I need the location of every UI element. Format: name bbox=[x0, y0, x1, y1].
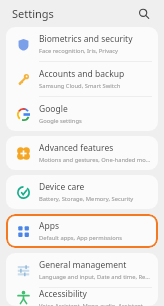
button[interactable]: Biometrics and security bbox=[6, 27, 158, 61]
button[interactable]: Advanced features bbox=[6, 136, 158, 170]
button[interactable]: Search bbox=[135, 5, 153, 23]
staticText: Google settings bbox=[39, 117, 82, 125]
staticText: Face recognition, Iris, Privacy bbox=[39, 47, 119, 55]
staticText: Motions and gestures, One-handed mode bbox=[39, 156, 152, 164]
staticText: Accounts and backup bbox=[39, 68, 125, 80]
button[interactable]: Accounts and backup bbox=[6, 62, 158, 96]
staticText: Default apps, App permissions bbox=[39, 234, 123, 242]
staticText: Biometrics and security bbox=[39, 33, 133, 45]
staticText: Voice Assistant, Mono audio, Assistant bbox=[39, 302, 143, 306]
staticText: General management bbox=[39, 259, 127, 271]
staticText: Apps bbox=[39, 220, 59, 232]
staticText: Samsung Cloud, Smart Switch bbox=[39, 82, 121, 90]
button[interactable]: Device care bbox=[6, 175, 158, 209]
button[interactable]: General management bbox=[6, 253, 158, 287]
staticText: Device care bbox=[39, 181, 85, 193]
button[interactable]: Accessibility bbox=[6, 288, 158, 306]
button[interactable]: Google bbox=[6, 97, 158, 131]
button[interactable]: Apps bbox=[6, 214, 158, 248]
staticText: Language and input, Date and time, Reset bbox=[39, 273, 152, 281]
staticText: Advanced features bbox=[39, 142, 114, 154]
staticText: Settings bbox=[12, 6, 54, 21]
staticText: Battery, Storage, Memory, Security bbox=[39, 195, 134, 203]
staticText: Accessibility bbox=[39, 288, 87, 300]
staticText: Google bbox=[39, 103, 68, 115]
button[interactable]: Apps bbox=[6, 214, 158, 248]
